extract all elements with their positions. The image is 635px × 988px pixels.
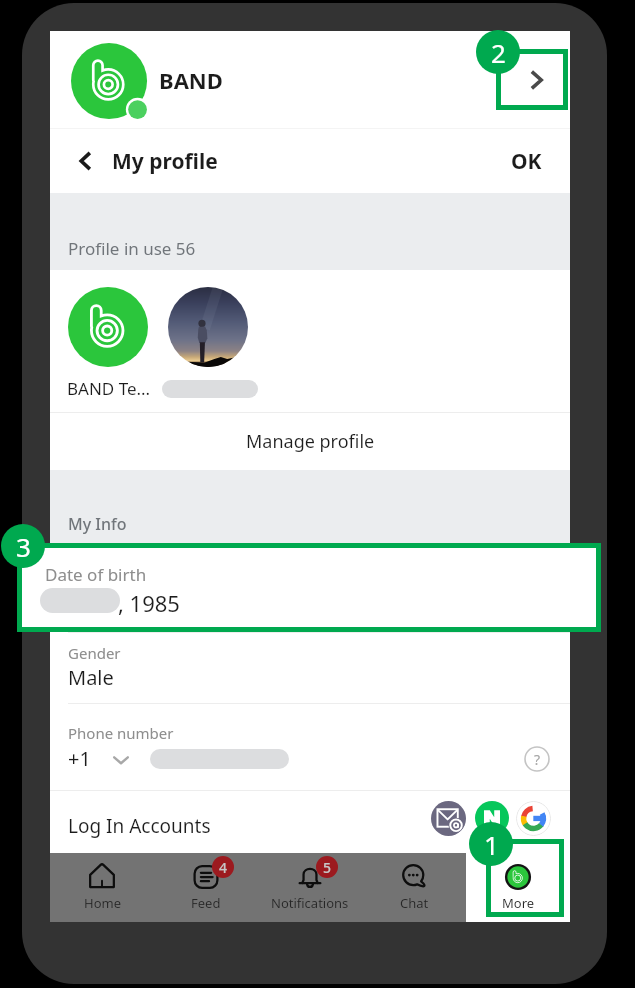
- staticText: Manage profile: [246, 429, 375, 454]
- staticText: More: [502, 894, 535, 912]
- staticText: Home: [84, 894, 121, 912]
- button[interactable]: [168, 287, 248, 367]
- button[interactable]: Manage profile: [50, 413, 570, 470]
- staticText: 1: [484, 827, 499, 862]
- staticText: My Info: [68, 513, 127, 535]
- staticText: Notifications: [271, 894, 349, 912]
- button[interactable]: [68, 287, 148, 367]
- staticText: Phone number: [68, 723, 174, 743]
- staticText: ?: [534, 750, 541, 769]
- staticText: Log In Accounts: [68, 813, 211, 839]
- button[interactable]: Gender: [50, 632, 570, 703]
- staticText: BAND: [159, 65, 223, 95]
- button[interactable]: OK: [499, 139, 554, 184]
- staticText: 4: [219, 858, 228, 877]
- button[interactable]: Chat: [362, 853, 466, 922]
- staticText: Gender: [68, 643, 121, 663]
- staticText: Feed: [191, 894, 221, 912]
- button[interactable]: 4: [154, 853, 258, 922]
- button[interactable]: BAND: [50, 31, 570, 128]
- button[interactable]: Home: [50, 853, 154, 922]
- button[interactable]: Phone number: [50, 703, 570, 790]
- staticText: , 1985: [118, 588, 180, 618]
- button[interactable]: Help: [523, 745, 551, 773]
- staticText: OK: [511, 147, 542, 176]
- staticText: 3: [16, 529, 31, 564]
- staticText: +1: [68, 745, 91, 772]
- staticText: Date of birth: [45, 563, 147, 586]
- staticText: 5: [323, 858, 332, 877]
- button[interactable]: 5: [258, 853, 362, 922]
- button[interactable]: Open BAND: [507, 51, 565, 109]
- button[interactable]: Back: [66, 141, 106, 181]
- button[interactable]: Date of birth: [17, 543, 601, 632]
- button[interactable]: Log In Accounts: [50, 790, 570, 853]
- staticText: Chat: [400, 894, 429, 912]
- staticText: BAND Te...: [67, 377, 151, 400]
- staticText: Profile in use 56: [68, 237, 196, 260]
- button[interactable]: More: [466, 853, 570, 922]
- staticText: My profile: [112, 147, 218, 176]
- staticText: Male: [68, 664, 114, 691]
- staticText: 2: [491, 35, 506, 70]
- button[interactable]: Date of birth: [50, 543, 570, 632]
